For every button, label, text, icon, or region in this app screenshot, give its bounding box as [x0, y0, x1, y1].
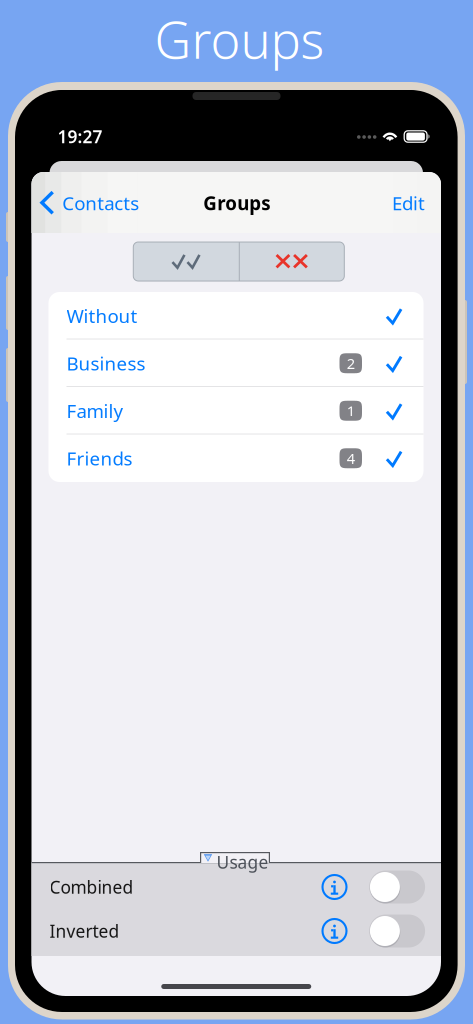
button[interactable]: Family — [48, 387, 423, 434]
staticText: Groups — [154, 5, 324, 73]
button[interactable]: Edit — [380, 181, 436, 225]
staticText: Without — [66, 303, 137, 328]
button[interactable]: About Inverted — [320, 917, 348, 945]
staticText: Friends — [66, 446, 132, 471]
staticText: 1 — [347, 401, 355, 420]
button[interactable]: Select all — [133, 242, 239, 281]
button[interactable]: Inverted — [369, 914, 425, 947]
staticText: Contacts — [62, 191, 139, 215]
staticText: 19:27 — [57, 125, 102, 148]
button[interactable]: Combined — [369, 870, 425, 903]
button[interactable]: About Combined — [320, 873, 348, 901]
staticText: Combined — [49, 875, 133, 898]
button[interactable]: Without — [48, 292, 423, 339]
button[interactable]: Deselect all — [239, 242, 344, 281]
button[interactable]: Contacts — [31, 181, 146, 225]
staticText: Family — [66, 398, 123, 423]
staticText: Usage — [216, 851, 268, 874]
staticText: 2 — [347, 353, 355, 373]
button[interactable]: Business — [48, 339, 423, 387]
staticText: Groups — [203, 191, 270, 215]
staticText: Edit — [392, 191, 425, 215]
button[interactable]: Usage — [200, 852, 270, 874]
staticText: 4 — [347, 448, 355, 468]
button[interactable]: Friends — [48, 434, 423, 482]
staticText: Inverted — [49, 919, 119, 942]
staticText: Business — [66, 351, 145, 376]
